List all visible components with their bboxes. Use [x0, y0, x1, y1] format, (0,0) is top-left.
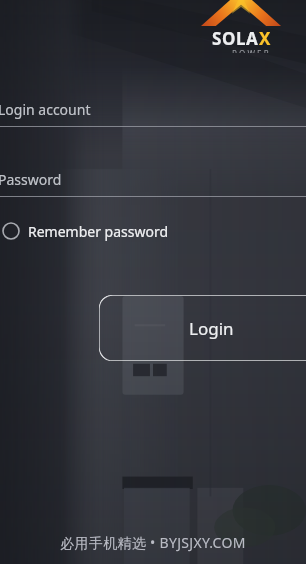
- staticText: X: [259, 27, 271, 50]
- staticText: Login account: [0, 100, 91, 119]
- button[interactable]: Remember password: [0, 214, 306, 248]
- staticText: Password: [0, 170, 62, 189]
- button[interactable]: Login account: [0, 92, 306, 126]
- button[interactable]: Password: [0, 162, 306, 196]
- staticText: Remember password: [28, 222, 169, 241]
- button[interactable]: Login: [99, 295, 306, 361]
- staticText: SOLA: [212, 27, 259, 50]
- staticText: POWER: [232, 48, 271, 53]
- staticText: 必用手机精选 • BYJSJXY.COM: [60, 533, 246, 552]
- staticText: Login: [189, 317, 234, 340]
